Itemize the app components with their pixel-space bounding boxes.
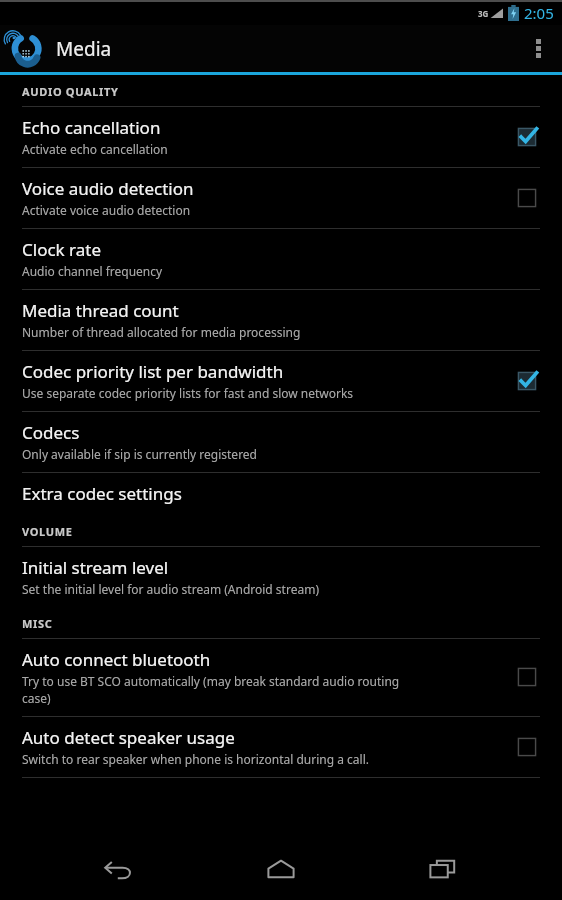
staticText: MISC <box>22 616 53 631</box>
button[interactable]: Codecs <box>0 412 562 472</box>
button[interactable]: Echo cancellation <box>510 120 544 154</box>
staticText: Audio channel frequency <box>22 263 163 279</box>
button[interactable]: Auto connect bluetooth <box>0 639 562 716</box>
staticText: Codec priority list per bandwidth <box>22 360 284 383</box>
staticText: Number of thread allocated for media pro… <box>22 324 301 340</box>
button[interactable]: Auto connect bluetooth <box>510 660 544 694</box>
staticText: Clock rate <box>22 238 102 261</box>
staticText: Use separate codec priority lists for fa… <box>22 385 354 401</box>
staticText: Initial stream level <box>22 556 169 579</box>
staticText: Auto detect speaker usage <box>22 726 235 749</box>
staticText: Switch to rear speaker when phone is hor… <box>22 751 369 767</box>
staticText: Extra codec settings <box>22 482 182 505</box>
staticText: 2:05 <box>524 3 554 23</box>
staticText: Set the initial level for audio stream (… <box>22 581 319 597</box>
staticText: Codecs <box>22 421 80 444</box>
staticText: Only available if sip is currently regis… <box>22 446 257 462</box>
button[interactable]: Echo cancellation <box>0 107 562 167</box>
button[interactable]: Clock rate <box>0 229 562 289</box>
staticText: Echo cancellation <box>22 116 161 139</box>
staticText: Try to use BT SCO automatically (may bre… <box>22 673 400 689</box>
button[interactable]: Home <box>238 841 324 897</box>
staticText: Activate echo cancellation <box>22 141 168 157</box>
button[interactable]: Codec priority list per bandwidth <box>510 364 544 398</box>
staticText: case) <box>22 690 51 706</box>
staticText: Media <box>56 36 112 62</box>
button[interactable]: More options <box>514 25 562 72</box>
staticText: Activate voice audio detection <box>22 202 191 218</box>
staticText: 3G <box>478 8 489 19</box>
button[interactable]: Voice audio detection <box>0 168 562 228</box>
staticText: AUDIO QUALITY <box>22 84 119 99</box>
button[interactable]: Recent apps <box>400 841 486 897</box>
staticText: Media thread count <box>22 299 179 322</box>
button[interactable]: Auto detect speaker usage <box>510 730 544 764</box>
button[interactable]: Auto detect speaker usage <box>0 717 562 777</box>
staticText: VOLUME <box>22 524 73 539</box>
button[interactable]: Back <box>76 841 162 897</box>
button[interactable]: Initial stream level <box>0 547 562 607</box>
button[interactable]: Voice audio detection <box>510 181 544 215</box>
staticText: Voice audio detection <box>22 177 194 200</box>
staticText: Auto connect bluetooth <box>22 648 211 671</box>
button[interactable]: Extra codec settings <box>0 473 562 515</box>
button[interactable]: Codec priority list per bandwidth <box>0 351 562 411</box>
button[interactable]: Media thread count <box>0 290 562 350</box>
